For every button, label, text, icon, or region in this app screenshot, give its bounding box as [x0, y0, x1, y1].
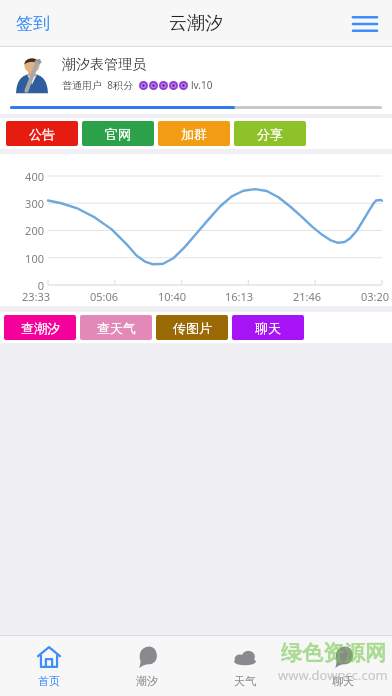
staticText: 05:06: [90, 289, 119, 304]
staticText: 首页: [38, 674, 60, 688]
staticText: 官网: [105, 126, 131, 142]
button[interactable]: 聊天: [294, 636, 392, 696]
button[interactable]: 首页: [0, 636, 98, 696]
button[interactable]: 传图片: [156, 315, 228, 340]
button[interactable]: 加群: [158, 121, 230, 146]
staticText: 聊天: [332, 674, 354, 688]
button[interactable]: 潮汐: [98, 636, 196, 696]
staticText: 21:46: [293, 289, 322, 304]
button[interactable]: 天气: [196, 636, 294, 696]
button[interactable]: 分享: [234, 121, 306, 146]
button[interactable]: Menu: [348, 7, 382, 41]
staticText: 天气: [234, 674, 256, 688]
staticText: 绿色资源网: [281, 640, 386, 666]
staticText: 23:33: [22, 289, 51, 304]
staticText: 16:13: [225, 289, 254, 304]
staticText: 公告: [29, 126, 55, 142]
staticText: 签到: [16, 13, 50, 34]
staticText: 400: [25, 169, 44, 184]
staticText: 传图片: [173, 320, 212, 336]
button[interactable]: 潮汐表管理员: [0, 47, 392, 100]
button[interactable]: 官网: [82, 121, 154, 146]
staticText: 聊天: [255, 320, 281, 336]
staticText: www.downcc.com: [278, 666, 388, 684]
staticText: lv.10: [191, 78, 213, 92]
staticText: 10:40: [158, 289, 187, 304]
staticText: 加群: [181, 126, 207, 142]
button[interactable]: 查天气: [80, 315, 152, 340]
staticText: 200: [25, 223, 44, 238]
staticText: 潮汐: [136, 674, 158, 688]
staticText: 潮汐表管理员: [62, 56, 146, 74]
button[interactable]: 聊天: [232, 315, 304, 340]
staticText: 普通用户 8积分: [62, 78, 139, 92]
button[interactable]: 签到: [8, 7, 58, 40]
staticText: 03:20: [361, 289, 390, 304]
button[interactable]: 公告: [6, 121, 78, 146]
staticText: 查潮汐: [21, 320, 60, 336]
button[interactable]: 查潮汐: [4, 315, 76, 340]
staticText: 0: [37, 278, 44, 293]
staticText: 查天气: [97, 320, 136, 336]
staticText: 分享: [257, 126, 283, 142]
staticText: 300: [25, 196, 44, 211]
staticText: 100: [25, 251, 44, 266]
staticText: 云潮汐: [169, 12, 223, 35]
